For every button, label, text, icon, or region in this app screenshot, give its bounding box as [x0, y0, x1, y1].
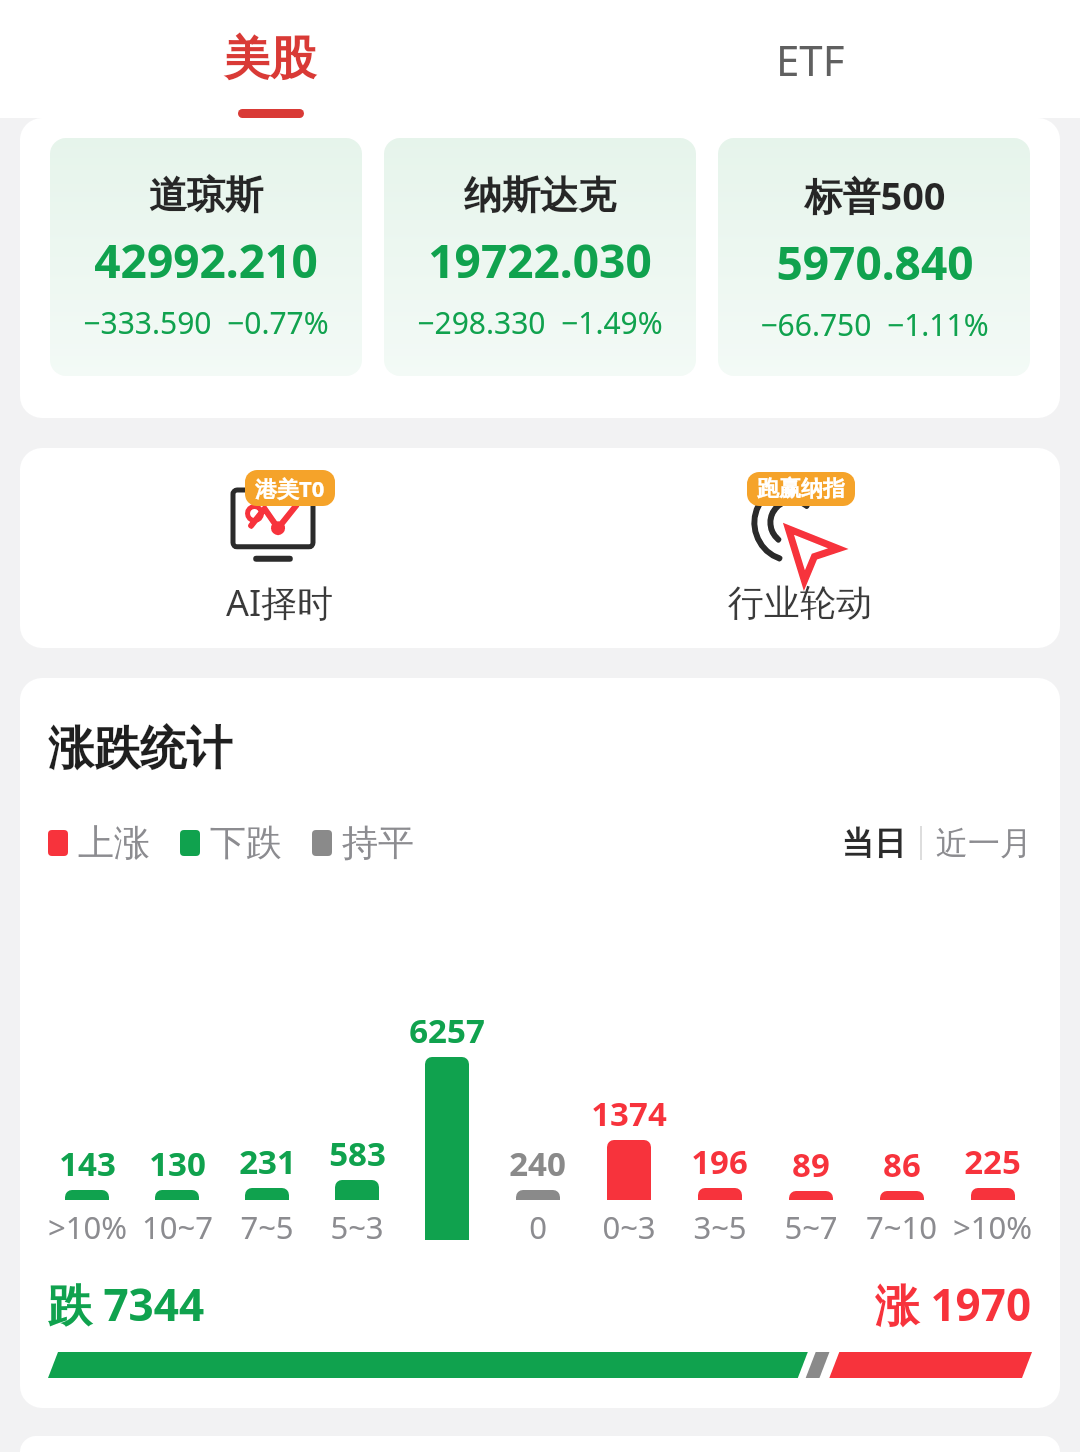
staticText: 196: [691, 1139, 748, 1184]
button[interactable]: 89: [765, 1142, 856, 1248]
staticText: 当日: [842, 823, 906, 863]
staticText: 0~3: [602, 1206, 656, 1248]
staticText: 上涨: [78, 820, 150, 865]
staticText: 583: [329, 1131, 386, 1176]
staticText: 3~5: [693, 1206, 747, 1248]
button[interactable]: 下跌: [180, 820, 282, 865]
button[interactable]: 583: [312, 1131, 402, 1248]
staticText: 纳斯达克: [464, 171, 616, 219]
staticText: 5~7: [784, 1206, 838, 1248]
button[interactable]: AI择时: [20, 448, 540, 648]
staticText: 持平: [342, 820, 414, 865]
staticText: 5970.840: [776, 231, 974, 294]
staticText: 行业轮动: [728, 580, 872, 625]
staticText: 130: [149, 1141, 206, 1186]
button[interactable]: 道琼斯: [50, 138, 362, 376]
staticText: 0: [529, 1206, 547, 1248]
button[interactable]: 纳斯达克: [384, 138, 696, 376]
button[interactable]: 225: [947, 1139, 1038, 1248]
staticText: 港美T0: [255, 473, 325, 503]
staticText: 240: [509, 1141, 566, 1186]
button[interactable]: 当日: [842, 823, 906, 863]
staticText: 89: [792, 1142, 830, 1187]
button[interactable]: 231: [222, 1139, 312, 1248]
staticText: −66.750 −1.11%: [760, 304, 989, 345]
staticText: >10%: [48, 1206, 127, 1248]
staticText: 86: [883, 1142, 921, 1187]
button[interactable]: 130: [132, 1141, 222, 1248]
button[interactable]: 6257: [402, 1008, 492, 1248]
button[interactable]: 196: [674, 1139, 765, 1248]
staticText: 跑赢纳指: [757, 475, 845, 503]
button[interactable]: 标普500: [718, 138, 1030, 376]
button[interactable]: 近一月: [936, 823, 1032, 863]
staticText: 1374: [591, 1091, 667, 1136]
button[interactable]: 美股: [0, 0, 540, 118]
staticText: 标普500: [804, 169, 946, 221]
staticText: 7~10: [866, 1206, 937, 1248]
staticText: 5~3: [330, 1206, 384, 1248]
staticText: 19722.030: [428, 229, 652, 292]
button[interactable]: 1374: [583, 1091, 674, 1248]
staticText: 涨 1970: [875, 1274, 1032, 1334]
button[interactable]: 上涨: [48, 820, 150, 865]
staticText: 道琼斯: [149, 171, 263, 219]
button[interactable]: 行业轮动: [540, 448, 1060, 648]
button[interactable]: 143: [42, 1141, 132, 1248]
button[interactable]: 持平: [312, 820, 414, 865]
staticText: ETF: [776, 31, 845, 88]
staticText: −298.330 −1.49%: [417, 302, 663, 343]
staticText: >10%: [953, 1206, 1032, 1248]
staticText: −333.590 −0.77%: [83, 302, 329, 343]
staticText: 美股: [224, 30, 316, 88]
staticText: 231: [239, 1139, 296, 1184]
staticText: 6257: [409, 1008, 485, 1053]
staticText: 225: [964, 1139, 1021, 1184]
staticText: 143: [59, 1141, 116, 1186]
staticText: 7~5: [240, 1206, 294, 1248]
staticText: 10~7: [142, 1206, 213, 1248]
staticText: 涨跌统计: [48, 720, 232, 778]
staticText: AI择时: [226, 578, 334, 627]
staticText: 近一月: [936, 823, 1032, 863]
button[interactable]: 240: [492, 1141, 583, 1248]
staticText: 跌 7344: [48, 1274, 205, 1334]
button[interactable]: ETF: [540, 0, 1080, 118]
other: 行业轮动: [751, 484, 841, 568]
other: AI择时: [231, 488, 315, 566]
button[interactable]: 86: [856, 1142, 947, 1248]
staticText: 下跌: [210, 820, 282, 865]
staticText: 42992.210: [94, 229, 318, 292]
